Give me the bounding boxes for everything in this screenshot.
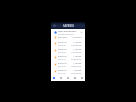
staticText: SAVINGS <box>63 24 74 28</box>
button[interactable]: Tab 4 <box>78 75 85 81</box>
button[interactable]: Tab 2 <box>64 75 71 81</box>
staticText: 1,750.00 <box>73 48 82 51</box>
button[interactable]: Enero 25 <box>51 40 85 47</box>
staticText: Enero 25 <box>58 55 67 58</box>
staticText: Ene 2024 <box>58 72 66 74</box>
staticText: Enero 25 <box>58 62 67 65</box>
button[interactable]: Enero 25 <box>51 47 85 54</box>
staticText: Total aportaciones <box>58 30 77 33</box>
button[interactable]: Enero 25 <box>51 61 85 68</box>
staticText: 1,750.00 <box>73 69 82 72</box>
button[interactable]: Total aportaciones <box>51 29 85 35</box>
staticText: Ene 2024 <box>58 58 66 60</box>
button[interactable]: Tab 3 <box>71 75 78 81</box>
staticText: Completado <box>71 72 82 74</box>
button[interactable]: Ene 2024 <box>51 35 85 40</box>
staticText: Ene 2024 <box>58 51 66 53</box>
button[interactable]: Menu <box>53 24 56 27</box>
staticText: 1,750.00 <box>73 55 82 58</box>
button[interactable]: Enero 25 <box>51 54 85 61</box>
staticText: Mes de Enero 2024 <box>58 33 75 35</box>
staticText: Ene 2024 <box>58 36 67 39</box>
staticText: Ene 2024 <box>58 65 66 67</box>
staticText: 1,750.00 <box>73 41 82 44</box>
staticText: 1,750.00 <box>73 62 82 65</box>
staticText: 12,000.00 <box>72 36 82 39</box>
staticText: Completado <box>71 65 82 67</box>
button[interactable]: Enero 25 <box>51 68 85 75</box>
staticText: Completado <box>71 44 82 46</box>
staticText: Completado <box>71 58 82 60</box>
staticText: Enero 25 <box>58 48 67 51</box>
button[interactable]: Tab 1 <box>57 75 64 81</box>
staticText: Ene 2024 <box>58 44 66 46</box>
button[interactable]: Tab 0 <box>51 75 57 81</box>
staticText: Enero 25 <box>58 69 67 72</box>
staticText: Completado <box>71 51 82 53</box>
staticText: Enero 25 <box>58 41 67 44</box>
